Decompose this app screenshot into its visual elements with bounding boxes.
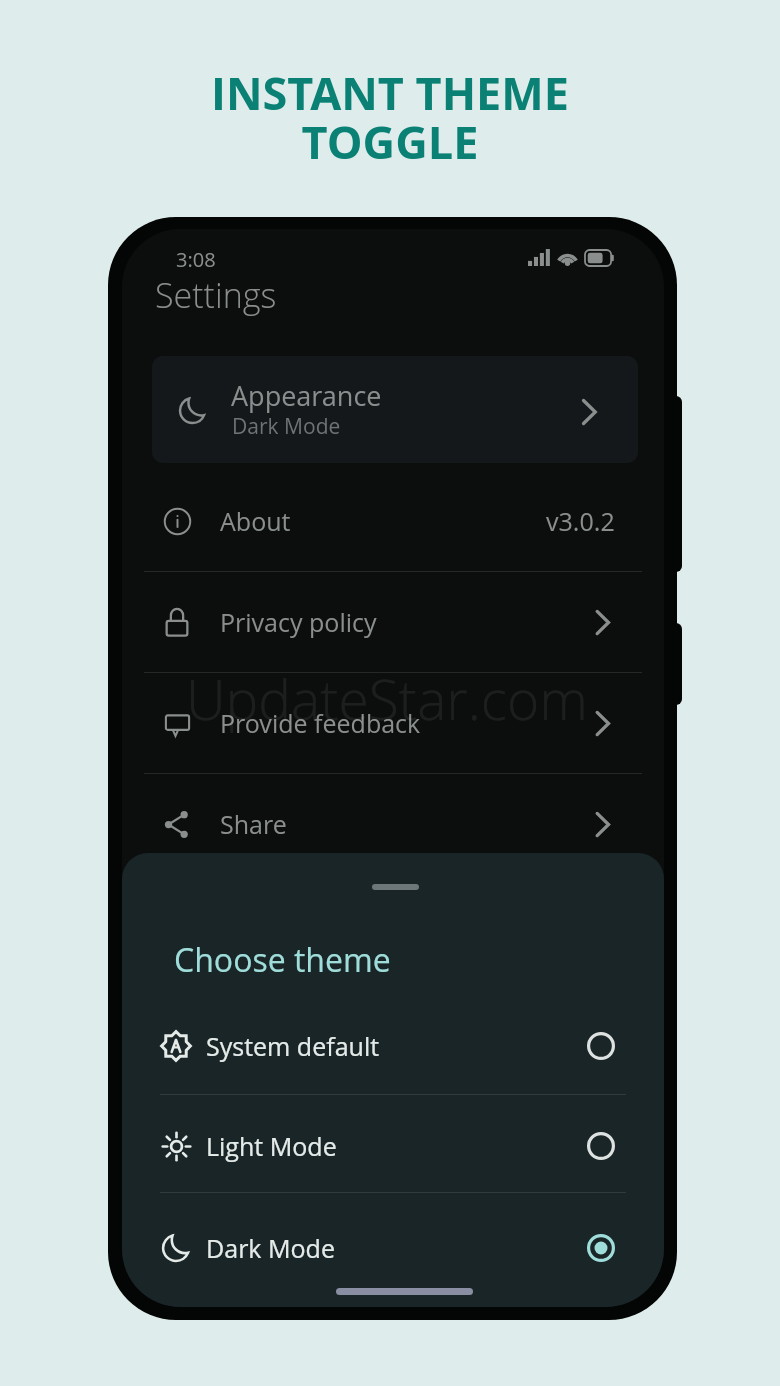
other: Cellular signal (528, 249, 550, 266)
staticText: v3.0.2 (546, 504, 615, 538)
staticText: Appearance (231, 377, 382, 414)
staticText: Choose theme (174, 938, 391, 982)
staticText: Share (220, 807, 287, 841)
staticText: Dark Mode (232, 412, 341, 441)
button[interactable]: Appearance (152, 356, 638, 463)
staticText: Light Mode (206, 1129, 337, 1163)
button[interactable]: Light Mode (122, 1096, 664, 1196)
button[interactable]: Share (122, 774, 664, 874)
staticText: UpdateStar.com (186, 661, 588, 736)
staticText: System default (206, 1029, 380, 1063)
staticText: 3:08 (176, 246, 216, 273)
staticText: Settings (155, 272, 277, 318)
other: Wi-Fi (556, 248, 579, 266)
staticText: Provide feedback (220, 706, 421, 740)
staticText: About (220, 504, 291, 538)
button[interactable]: About (122, 471, 664, 571)
button[interactable]: Provide feedback (122, 673, 664, 773)
staticText: Privacy policy (220, 605, 377, 639)
other: Battery (585, 250, 615, 266)
button[interactable]: System default (122, 996, 664, 1096)
staticText: INSTANT THEME TOGGLE (0, 62, 780, 173)
staticText: Dark Mode (206, 1231, 335, 1265)
button[interactable]: Dark Mode (122, 1198, 664, 1298)
button[interactable]: Privacy policy (122, 572, 664, 672)
